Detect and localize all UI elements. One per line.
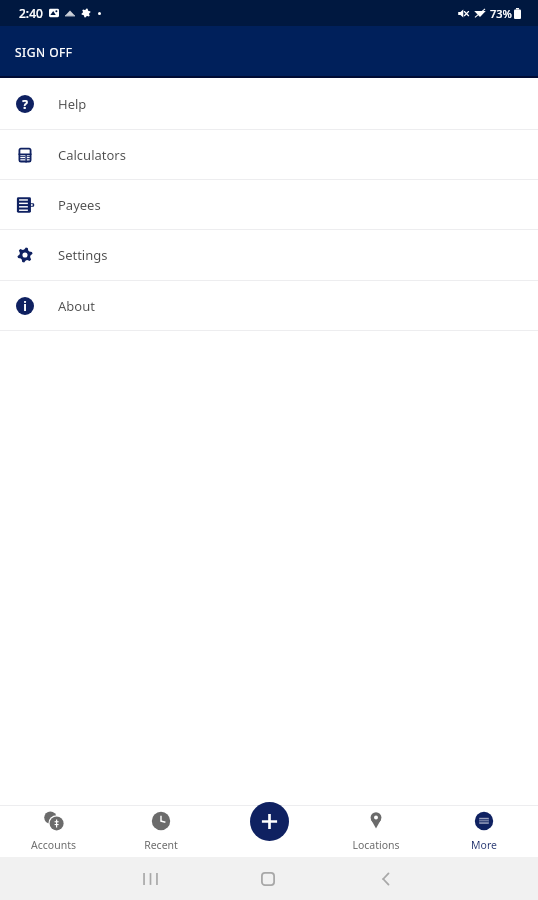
staticText: Calculators [58,146,126,164]
staticText: Locations [352,838,400,852]
button[interactable]: Settings [0,230,538,280]
staticText: Help [58,95,87,113]
button[interactable]: Recents [133,862,167,896]
button[interactable]: Back [369,862,403,896]
button[interactable]: Accounts [0,805,107,857]
staticText: i [23,298,27,314]
button[interactable]: i [0,281,538,330]
staticText: More [471,838,497,852]
staticText: SIGN OFF [15,44,73,60]
button[interactable]: Calculators [0,130,538,179]
button[interactable]: SIGN OFF [0,34,88,70]
button[interactable]: Locations [322,805,430,857]
staticText: 2:40 [19,5,43,21]
staticText: ? [22,96,28,112]
staticText: 73% [490,6,512,21]
staticText: Recent [144,838,178,852]
staticText: Accounts [31,838,76,852]
staticText: Payees [58,196,101,214]
staticText: Settings [58,246,108,264]
staticText: About [58,297,95,315]
button[interactable]: Payees [0,180,538,229]
button[interactable]: Home [251,862,285,896]
button[interactable]: Add [250,802,289,841]
button[interactable]: Recent [107,805,214,857]
button[interactable]: More [430,805,538,857]
button[interactable]: ? [0,78,538,129]
